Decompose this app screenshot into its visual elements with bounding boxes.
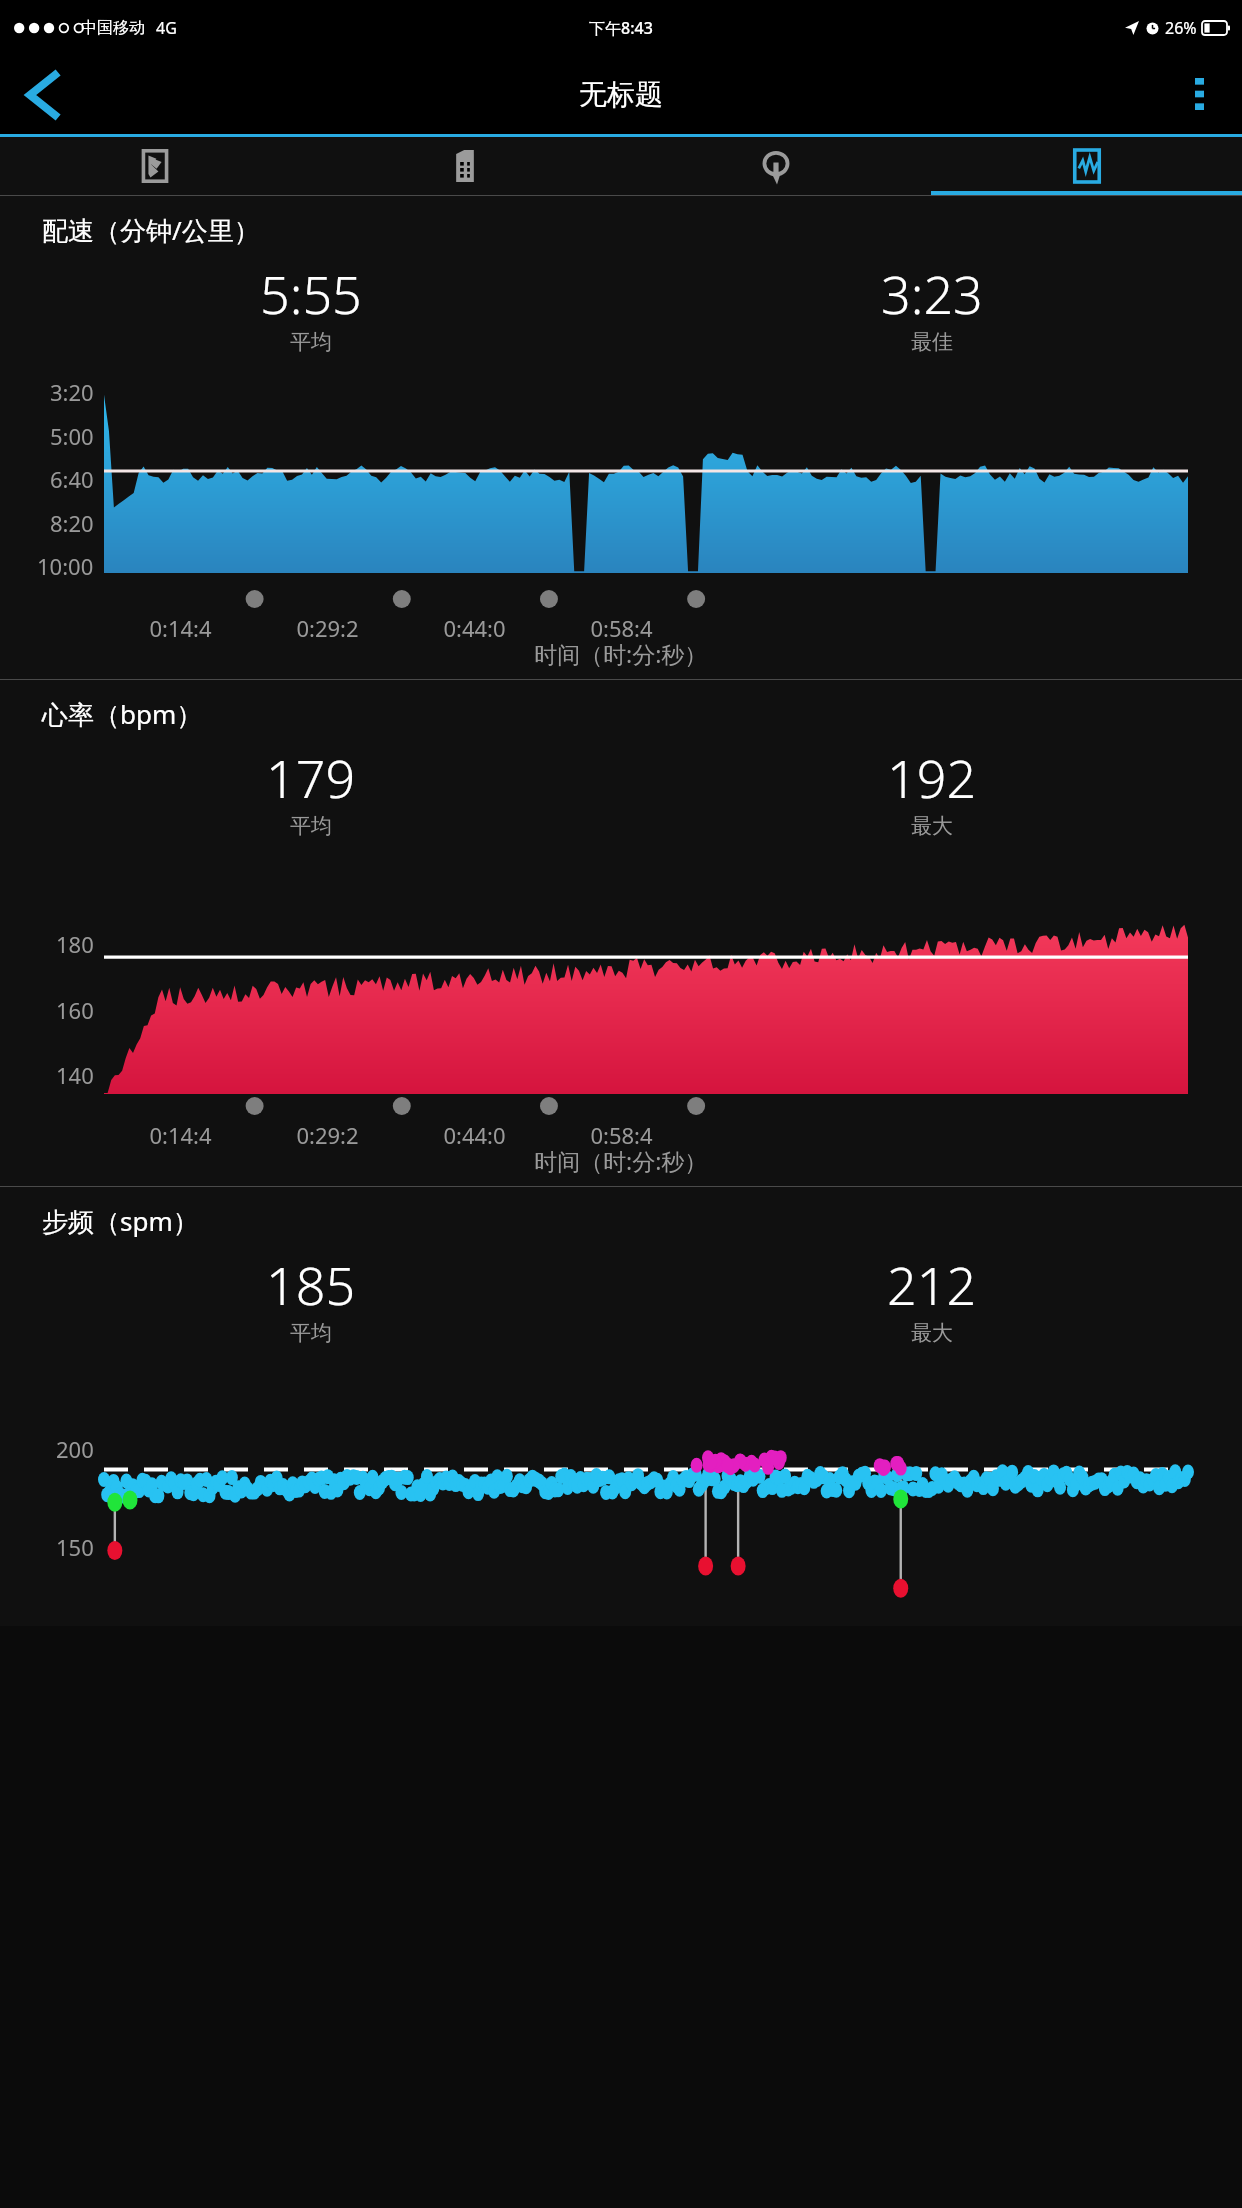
staticText: 8:20 (50, 508, 94, 538)
staticText: 3:20 (50, 377, 94, 407)
staticText: 时间（时:分:秒） (534, 638, 708, 669)
staticText: 最大 (911, 1320, 953, 1346)
staticText: 中国移动 (81, 18, 145, 38)
button[interactable]: Back (8, 62, 74, 128)
staticText: 0:14:4 (107, 613, 254, 643)
staticText: 平均 (290, 813, 332, 839)
button[interactable]: More options (1166, 62, 1232, 128)
staticText: 150 (56, 1532, 94, 1562)
button[interactable]: Laps (620, 137, 931, 195)
staticText: 0:44:0 (401, 1120, 548, 1150)
staticText: 下午8:43 (589, 17, 653, 39)
button[interactable]: Charts (931, 137, 1242, 195)
staticText: 5:55 (260, 258, 362, 329)
staticText: 10:00 (37, 551, 94, 581)
staticText: 0:14:4 (107, 1120, 254, 1150)
staticText: 最佳 (911, 329, 953, 355)
staticText: 0:58:4 (548, 613, 695, 643)
staticText: 配速（分钟/公里） (42, 212, 260, 248)
staticText: 无标题 (579, 77, 663, 112)
staticText: 160 (56, 995, 94, 1025)
staticText: 192 (887, 742, 977, 813)
staticText: 180 (56, 929, 94, 959)
staticText: 200 (56, 1434, 94, 1464)
staticText: 平均 (290, 329, 332, 355)
staticText: 185 (266, 1249, 356, 1320)
staticText: 140 (56, 1060, 94, 1090)
staticText: 179 (266, 742, 356, 813)
staticText: 26% (1165, 17, 1197, 39)
staticText: 4G (156, 17, 177, 39)
staticText: 步频（spm） (42, 1203, 199, 1239)
staticText: 平均 (290, 1320, 332, 1346)
staticText: 0:58:4 (548, 1120, 695, 1150)
staticText: 3:23 (881, 258, 983, 329)
staticText: 0:44:0 (401, 613, 548, 643)
button[interactable]: Map (0, 137, 310, 195)
staticText: 0:29:2 (254, 613, 401, 643)
staticText: 时间（时:分:秒） (534, 1145, 708, 1176)
staticText: 212 (887, 1249, 977, 1320)
staticText: 心率（bpm） (42, 696, 203, 732)
staticText: 6:40 (50, 464, 94, 494)
staticText: 0:29:2 (254, 1120, 401, 1150)
button[interactable]: Details (310, 137, 620, 195)
staticText: 5:00 (50, 421, 94, 451)
staticText: 最大 (911, 813, 953, 839)
